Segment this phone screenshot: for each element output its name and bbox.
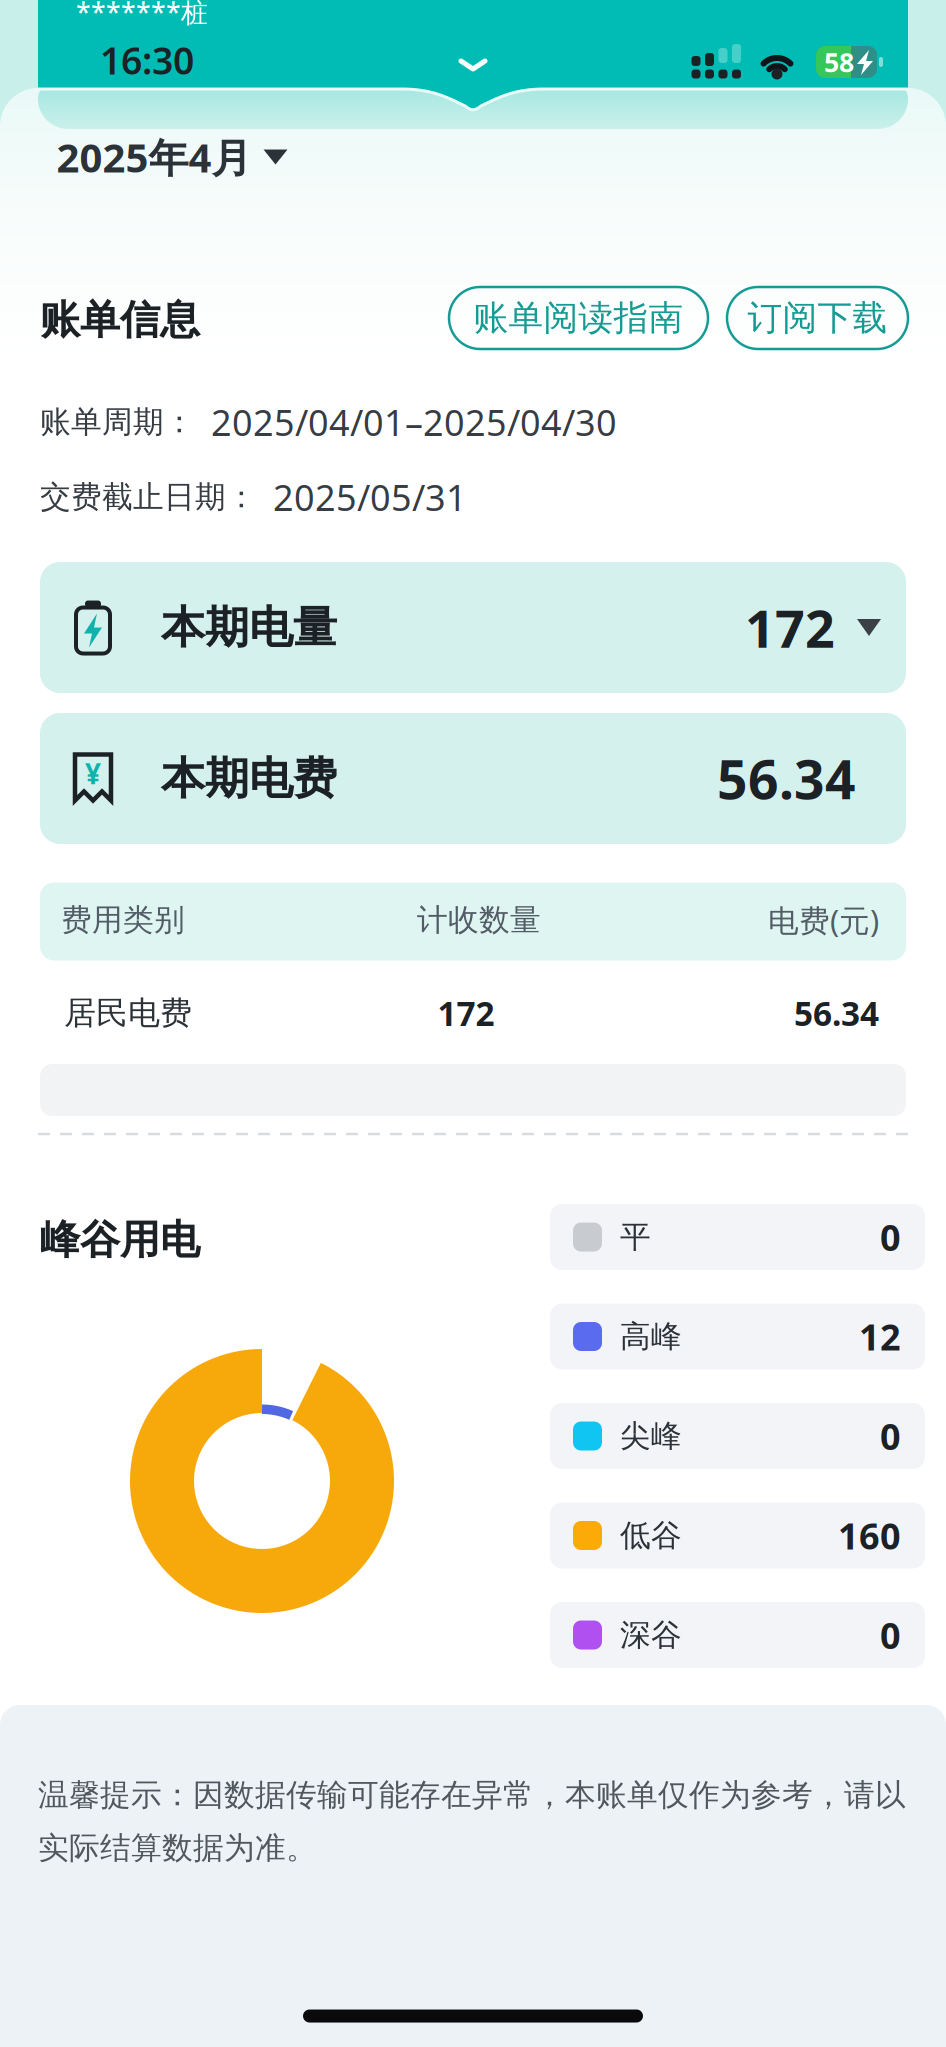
- staticText: 0: [880, 1412, 901, 1460]
- staticText: 居民电费: [64, 993, 192, 1033]
- staticText: 账单周期：: [40, 403, 195, 441]
- staticText: 2025/04/01–2025/04/30: [211, 398, 617, 446]
- staticText: 交费截止日期：: [40, 478, 257, 516]
- staticText: 172: [745, 593, 835, 662]
- staticText: 电费(元): [768, 900, 879, 940]
- staticText: 温馨提示：因数据传输可能存在异常，本账单仅作为参考，请以: [38, 1776, 906, 1814]
- staticText: 订阅下载: [747, 297, 887, 339]
- staticText: 16:30: [100, 35, 194, 85]
- staticText: 56.34: [717, 743, 856, 814]
- staticText: 0: [880, 1611, 901, 1659]
- button[interactable]: 本期电量: [40, 562, 906, 693]
- staticText: 高峰: [620, 1318, 682, 1355]
- button[interactable]: 订阅下载: [727, 287, 908, 349]
- staticText: *******桩: [76, 0, 208, 30]
- staticText: 12: [859, 1313, 901, 1360]
- staticText: 160: [838, 1512, 901, 1559]
- staticText: 实际结算数据为准。: [38, 1829, 317, 1867]
- staticText: 2025/05/31: [273, 473, 467, 521]
- staticText: 0: [880, 1213, 901, 1261]
- staticText: 平: [620, 1218, 651, 1256]
- staticText: 峰谷用电: [40, 1215, 200, 1264]
- staticText: 本期电费: [161, 751, 337, 805]
- button[interactable]: 账单阅读指南: [449, 287, 708, 349]
- staticText: 2025年4月: [56, 130, 251, 183]
- button[interactable]: 收起: [453, 56, 493, 76]
- staticText: 深谷: [620, 1616, 682, 1654]
- staticText: ¥: [85, 755, 101, 792]
- staticText: 172: [437, 991, 494, 1035]
- staticText: 费用类别: [61, 901, 185, 939]
- staticText: 低谷: [620, 1517, 682, 1554]
- button[interactable]: 2025年4月: [56, 127, 287, 187]
- staticText: 本期电量: [161, 600, 337, 654]
- staticText: 56.34: [794, 991, 879, 1035]
- staticText: 58: [824, 44, 854, 80]
- staticText: 账单阅读指南: [473, 297, 683, 339]
- staticText: 账单信息: [40, 295, 200, 344]
- staticText: 尖峰: [620, 1417, 682, 1455]
- staticText: 计收数量: [417, 901, 541, 939]
